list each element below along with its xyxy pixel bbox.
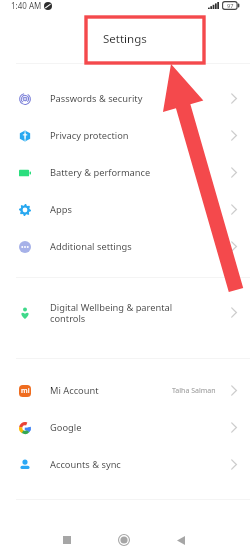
staticText: Mi Account xyxy=(50,384,168,397)
staticText: 97 xyxy=(227,2,234,10)
staticText: Digital Wellbeing & parental controls xyxy=(50,301,214,325)
button[interactable]: Back xyxy=(166,529,196,551)
staticText: Additional settings xyxy=(50,240,214,253)
button[interactable]: mi xyxy=(0,372,250,409)
button[interactable]: Battery & performance xyxy=(0,154,250,191)
staticText: Privacy protection xyxy=(50,129,214,142)
button[interactable]: Apps xyxy=(0,191,250,228)
staticText: mi xyxy=(21,386,30,396)
staticText: Apps xyxy=(50,203,214,216)
staticText: Google xyxy=(50,421,214,434)
staticText: Passwords & security xyxy=(50,92,214,105)
button[interactable]: Digital Wellbeing & parental controls xyxy=(0,290,250,335)
staticText: Settings xyxy=(103,31,147,47)
staticText: 1:40 AM xyxy=(11,0,42,11)
button[interactable]: Recent apps xyxy=(52,529,82,551)
staticText: Battery & performance xyxy=(50,166,214,179)
button[interactable]: Accounts & sync xyxy=(0,446,250,483)
button[interactable]: Google xyxy=(0,409,250,446)
button[interactable]: Home xyxy=(109,529,139,551)
button[interactable]: Additional settings xyxy=(0,228,250,265)
button[interactable]: Passwords & security xyxy=(0,80,250,117)
button[interactable]: Privacy protection xyxy=(0,117,250,154)
staticText: Talha Salman xyxy=(172,386,216,396)
staticText: Accounts & sync xyxy=(50,458,214,471)
